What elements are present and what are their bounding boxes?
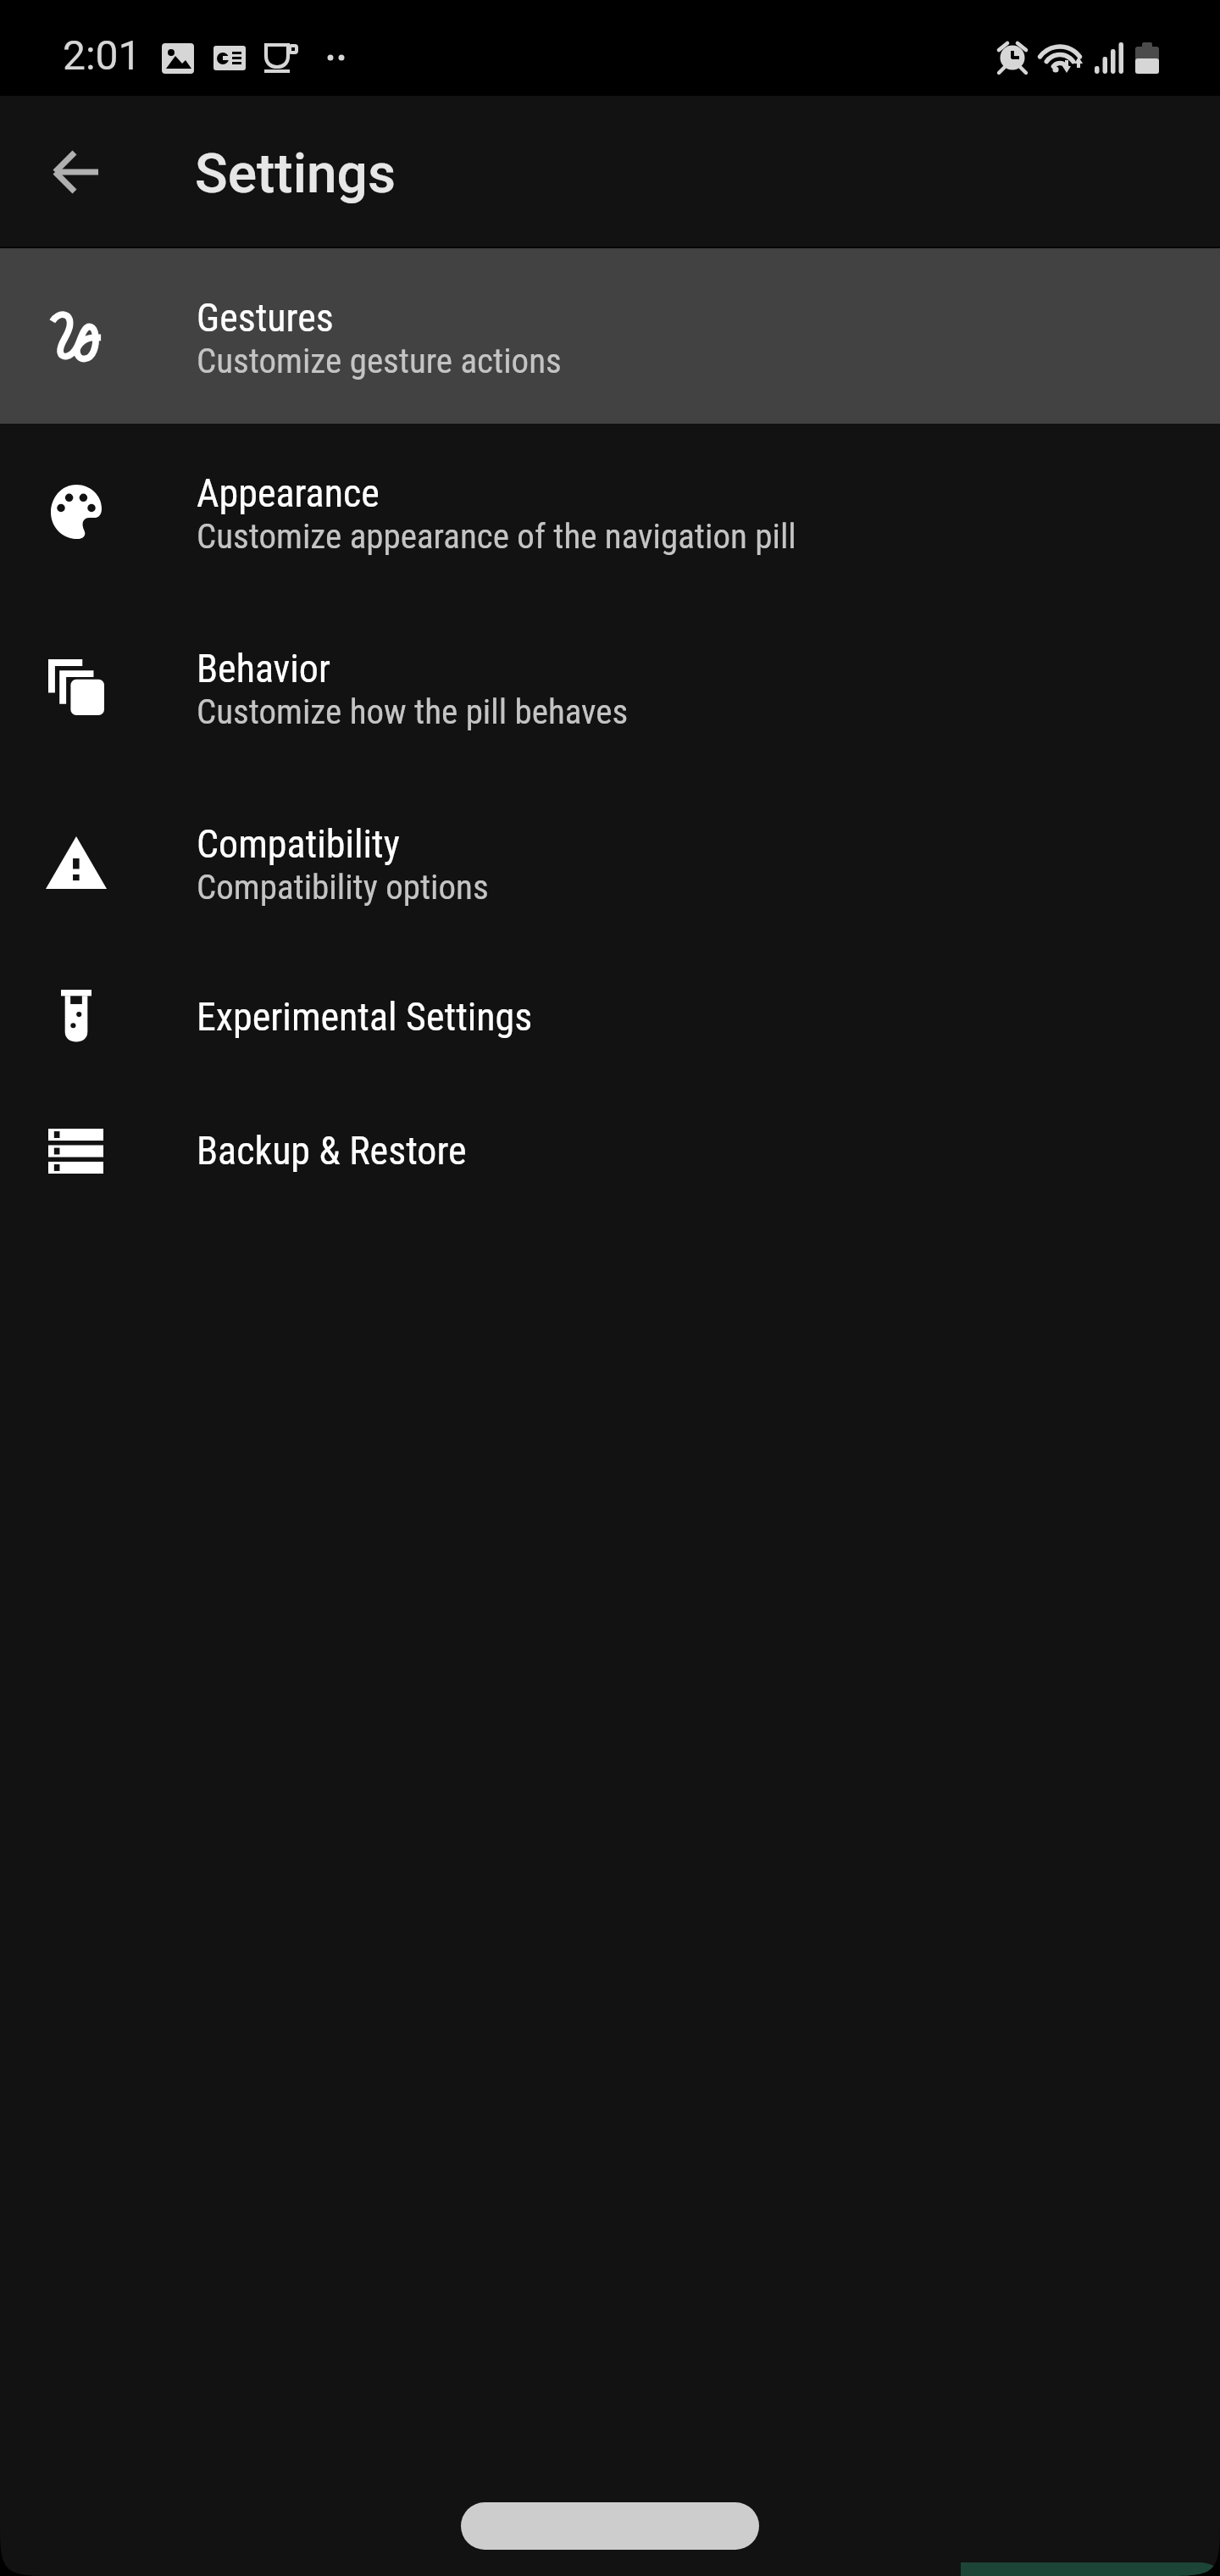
button[interactable]: Behavior — [0, 599, 1220, 774]
button[interactable]: Home — [461, 2502, 759, 2550]
staticText: Customize how the pill behaves — [197, 691, 629, 732]
button[interactable]: Backup & Restore — [0, 1084, 1220, 1218]
button[interactable]: Experimental Settings — [0, 950, 1220, 1084]
staticText: 2:01 — [63, 31, 141, 79]
staticText: Customize appearance of the navigation p… — [197, 516, 796, 557]
staticText: Backup & Restore — [197, 1128, 467, 1174]
button[interactable]: Gestures — [0, 248, 1220, 424]
staticText: Experimental Settings — [197, 994, 533, 1040]
staticText: Appearance — [197, 470, 380, 516]
staticText: Compatibility — [197, 821, 400, 867]
staticText: Settings — [195, 142, 396, 206]
button[interactable]: Navigate up — [22, 118, 130, 226]
button[interactable]: Compatibility — [0, 774, 1220, 950]
button[interactable]: Appearance — [0, 424, 1220, 599]
staticText: Behavior — [197, 646, 330, 691]
staticText: Customize gesture actions — [197, 341, 562, 381]
staticText: Compatibility options — [197, 867, 489, 908]
staticText: Gestures — [197, 295, 334, 341]
